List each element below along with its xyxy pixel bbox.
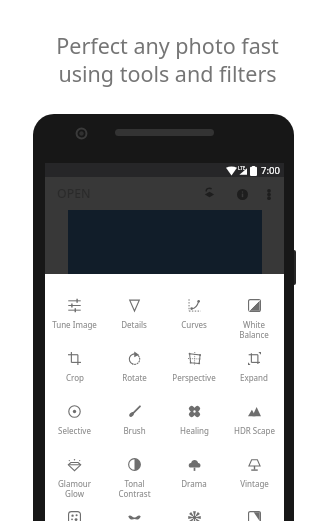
button[interactable] xyxy=(224,506,284,521)
button[interactable]: Expand xyxy=(224,347,284,400)
staticText: Tonal Contrast xyxy=(118,478,151,499)
staticText: Selective xyxy=(58,425,91,436)
button[interactable]: HDR Scape xyxy=(224,400,284,453)
button[interactable]: Glamour Glow xyxy=(45,453,104,506)
button[interactable]: Details xyxy=(104,294,164,347)
button[interactable]: Brush xyxy=(104,400,164,453)
button[interactable]: Edit history xyxy=(197,180,221,208)
staticText: Tune Image xyxy=(52,319,97,330)
staticText: Curves xyxy=(181,319,207,330)
button[interactable]: More options xyxy=(261,180,277,208)
staticText: OPEN xyxy=(57,185,91,202)
button[interactable]: Tune Image xyxy=(45,294,104,347)
button[interactable]: Crop xyxy=(45,347,104,400)
staticText: Glamour Glow xyxy=(58,478,91,499)
button[interactable]: White Balance xyxy=(224,294,284,347)
staticText: Drama xyxy=(181,478,207,489)
button[interactable]: Rotate xyxy=(104,347,164,400)
button[interactable]: Healing xyxy=(164,400,224,453)
staticText: Healing xyxy=(180,425,209,436)
staticText: Details xyxy=(121,319,147,330)
button[interactable] xyxy=(45,506,104,521)
staticText: Vintage xyxy=(240,478,269,489)
staticText: Brush xyxy=(123,425,146,436)
staticText: LTE xyxy=(238,165,246,171)
button[interactable]: Drama xyxy=(164,453,224,506)
staticText: HDR Scape xyxy=(234,425,275,436)
button[interactable]: Vintage xyxy=(224,453,284,506)
staticText: Crop xyxy=(66,372,84,383)
staticText: White Balance xyxy=(239,319,269,340)
staticText: Rotate xyxy=(122,372,147,383)
button[interactable] xyxy=(164,506,224,521)
staticText: Perspective xyxy=(172,372,216,383)
button[interactable]: Perspective xyxy=(164,347,224,400)
staticText: Perfect any photo fast using tools and f… xyxy=(5,31,325,88)
button[interactable]: Tonal Contrast xyxy=(104,453,164,506)
button[interactable]: Selective xyxy=(45,400,104,453)
staticText: 7:00 xyxy=(261,164,280,177)
button[interactable]: Info xyxy=(230,180,254,208)
button[interactable] xyxy=(104,506,164,521)
button[interactable]: Curves xyxy=(164,294,224,347)
staticText: Expand xyxy=(240,372,268,383)
